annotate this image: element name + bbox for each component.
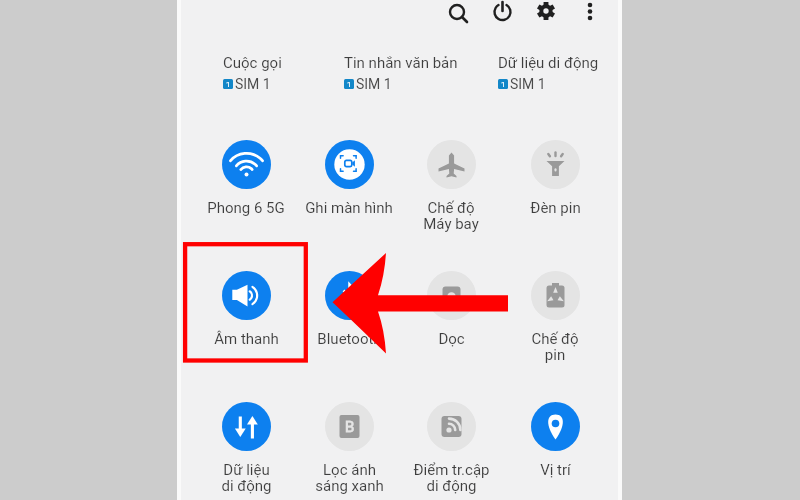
button[interactable]: Power (487, 0, 521, 34)
button[interactable]: Chế độ pin (505, 271, 605, 364)
staticText: B (345, 418, 355, 436)
staticText: Điểm tr.cập di động (413, 461, 490, 495)
button[interactable]: Search (442, 0, 476, 34)
button[interactable]: Chế độ Máy bay (401, 140, 501, 233)
button[interactable]: Settings (531, 0, 565, 34)
button[interactable]: Vị trí (505, 402, 605, 479)
staticText: Phong 6 5G (207, 199, 285, 217)
staticText: 1 (501, 80, 506, 89)
button[interactable]: B (299, 402, 399, 495)
staticText: Cuộc gọi (223, 54, 282, 72)
staticText: Ghi màn hình (305, 199, 393, 217)
staticText: Dọc (438, 330, 465, 348)
staticText: Âm thanh (214, 330, 279, 348)
staticText: Đèn pin (530, 199, 581, 217)
button[interactable]: Điểm tr.cập di động (401, 402, 501, 495)
button[interactable]: Dữ liệu di động (196, 402, 296, 495)
button[interactable]: Ghi màn hình (299, 140, 399, 217)
staticText: Chế độ pin (531, 330, 579, 364)
button[interactable]: Bluetooth (299, 271, 399, 348)
button[interactable]: Đèn pin (505, 140, 605, 217)
staticText: Vị trí (540, 461, 571, 479)
button[interactable]: Dọc (401, 271, 501, 348)
staticText: Dữ liệu di động (221, 461, 272, 495)
staticText: SIM 1 (356, 76, 392, 92)
staticText: Chế độ Máy bay (423, 199, 479, 233)
staticText: Lọc ánh sáng xanh (315, 461, 384, 495)
staticText: Bluetooth (317, 330, 382, 348)
staticText: 1 (226, 80, 231, 89)
staticText: Tin nhắn văn bản (344, 54, 458, 72)
button[interactable]: Âm thanh (196, 271, 296, 348)
button[interactable]: More options (575, 0, 609, 34)
staticText: SIM 1 (510, 76, 546, 92)
staticText: Dữ liệu di động (498, 54, 599, 72)
staticText: 1 (347, 80, 352, 89)
button[interactable]: Phong 6 5G (196, 140, 296, 217)
staticText: SIM 1 (235, 76, 271, 92)
